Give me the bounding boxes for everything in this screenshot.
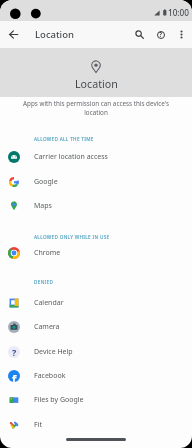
staticText: ALLOWED ALL THE TIME [34,136,94,142]
button[interactable]: Chrome [0,240,192,265]
staticText: Calendar [34,298,64,308]
staticText: Chrome [34,248,61,258]
button[interactable]: Search [129,24,150,45]
staticText: ALLOWED ONLY WHILE IN USE [34,234,110,240]
staticText: Location [35,28,74,41]
staticText: Files by Google [34,395,84,405]
staticText: Apps with this permission can access thi… [19,99,173,117]
staticText: Google [34,177,58,187]
staticText: Device Help [34,347,73,357]
staticText: Maps [34,201,52,211]
staticText: Camera [34,322,60,332]
staticText: Location [75,77,118,92]
button[interactable]: f [0,363,192,388]
button[interactable]: Google [0,169,192,194]
button[interactable]: ? [0,339,192,364]
button[interactable]: More options [171,24,192,45]
staticText: ? [159,30,163,39]
button[interactable]: Files by Google [0,387,192,412]
button[interactable]: Navigate up [3,24,24,45]
staticText: 10:00 [168,7,189,18]
staticText: f [12,371,17,382]
staticText: Carrier location access [34,152,108,162]
staticText: DENIED [34,279,54,285]
button[interactable]: Maps [0,193,192,218]
button[interactable]: Help [150,24,171,45]
staticText: Facebook [34,371,66,381]
button[interactable]: Carrier location access [0,144,192,169]
staticText: Fit [34,420,42,430]
button[interactable]: Calendar [0,290,192,315]
button[interactable]: Fit [0,412,192,437]
staticText: ? [12,346,17,358]
button[interactable]: Camera [0,314,192,339]
